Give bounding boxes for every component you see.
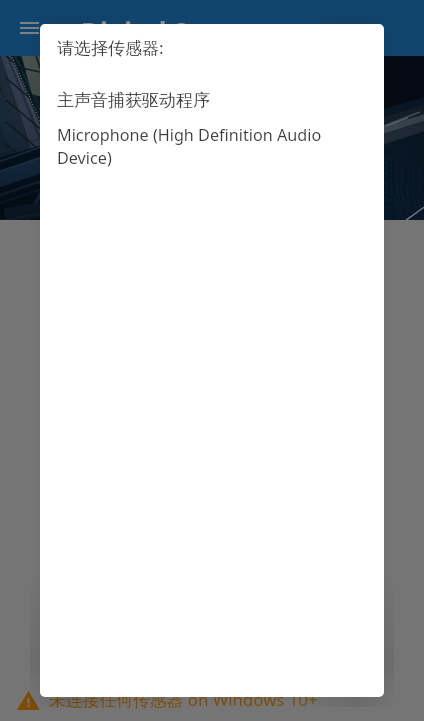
staticText: 请选择传感器: xyxy=(57,36,164,59)
staticText: Digital Sensor xyxy=(81,14,262,49)
staticText: 主声音捕获驱动程序 xyxy=(57,90,210,111)
button[interactable]: Open navigation menu xyxy=(13,12,45,44)
staticText: Microphone (High Definition Audio Device… xyxy=(57,124,362,169)
staticText: 未连接任何传感器 on Windows 10+ xyxy=(49,688,318,711)
